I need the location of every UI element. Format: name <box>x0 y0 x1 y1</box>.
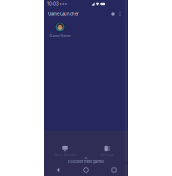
button[interactable]: Home <box>72 164 100 176</box>
staticText: Settings <box>100 153 113 157</box>
staticText: Discover more games <box>68 159 104 164</box>
button[interactable]: Discover more games <box>44 157 128 164</box>
button[interactable]: Recent apps <box>100 164 128 176</box>
button[interactable]: More options <box>117 8 123 20</box>
staticText: Game Booster <box>54 153 76 157</box>
button[interactable]: Profile <box>109 8 117 20</box>
staticText: 10:03 <box>47 1 59 7</box>
button[interactable]: Game Name <box>49 21 71 38</box>
staticText: Game Launcher <box>48 11 79 17</box>
staticText: Game Name <box>49 34 70 38</box>
button[interactable]: Settings <box>86 145 128 157</box>
button[interactable]: Game Booster <box>44 145 86 157</box>
button[interactable]: Back <box>44 164 72 176</box>
